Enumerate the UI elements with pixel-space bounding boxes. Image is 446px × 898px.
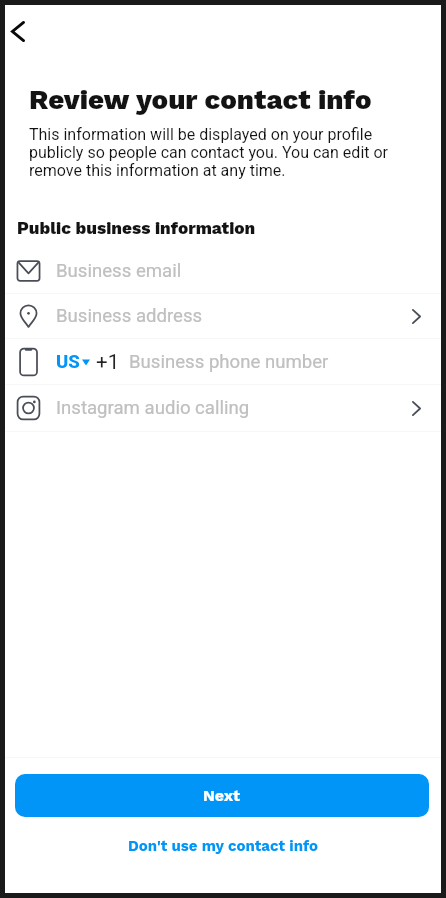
staticText: Instagram audio calling [56,397,250,419]
button[interactable]: Business address [5,294,441,338]
staticText: Business address [56,305,203,327]
button[interactable]: Next [15,774,429,817]
button[interactable]: Don't use my contact info [5,817,441,875]
staticText: Next [203,786,241,805]
staticText: Business phone number [129,351,329,373]
button[interactable]: US [5,339,441,384]
button[interactable]: Instagram audio calling [5,385,441,431]
staticText: Don't use my contact info [128,837,319,855]
staticText: Public business information [17,219,256,238]
button[interactable]: Back [0,9,40,53]
button[interactable]: Business email [5,248,441,293]
staticText: This information will be displayed on yo… [29,126,395,180]
staticText: +1 [96,350,120,374]
staticText: Business email [56,260,182,282]
staticText: US [56,351,80,373]
staticText: Review your contact info [29,84,372,115]
